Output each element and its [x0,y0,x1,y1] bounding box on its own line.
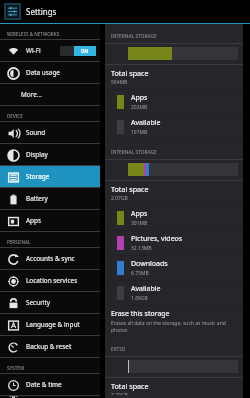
button[interactable]: Display [0,144,100,165]
button[interactable]: Apps [0,210,100,231]
button[interactable]: Apps [105,90,243,114]
button[interactable]: Battery [0,188,100,209]
button[interactable]: Pictures, videos [105,231,243,255]
staticText: Erase this storage [111,309,170,319]
staticText: Apps [131,93,148,103]
staticText: Battery [26,194,48,203]
button[interactable]: Backup & reset [0,336,100,357]
staticText: Apps [26,216,42,225]
staticText: DEVICE [7,113,23,119]
staticText: Location services [26,276,78,285]
staticText: 301MB [131,220,148,227]
button[interactable]: Erase this storage [105,306,243,337]
staticText: More... [21,90,42,99]
staticText: PERSONAL [7,239,31,245]
button[interactable]: Settings [0,0,250,23]
staticText: Pictures, videos [131,234,183,244]
staticText: Display [26,150,48,159]
staticText: 197MB [131,129,148,136]
button[interactable]: Security [0,292,100,313]
staticText: ON [81,48,89,54]
staticText: Total space [111,381,149,391]
button[interactable]: Accessibility [0,396,100,398]
staticText: Available [131,118,161,128]
other: Settings [5,4,20,19]
button[interactable]: Sound [0,122,100,143]
staticText: Sound [26,128,46,137]
button[interactable]: Accounts & sync [0,248,100,269]
button[interactable]: Date & time [0,374,100,395]
staticText: Data usage [26,68,60,77]
staticText: Accounts & sync [26,254,75,263]
staticText: Security [26,298,50,307]
button[interactable]: Language & input [0,314,100,335]
button[interactable]: ON [60,46,96,56]
staticText: Total space [111,184,149,194]
staticText: 504MB [111,79,128,86]
staticText: Language & input [26,320,80,329]
staticText: Storage [26,172,50,181]
staticText: 7.20GB [111,392,128,395]
button[interactable]: Storage [0,166,100,187]
staticText: Backup & reset [26,342,72,351]
button[interactable]: More... [0,84,100,105]
staticText: 202MB [131,104,148,111]
staticText: Apps [131,209,148,219]
staticText: Available [131,284,161,294]
staticText: WIRELESS & NETWORKS [7,31,60,37]
button[interactable]: Downloads [105,256,243,280]
staticText: Date & time [26,380,62,389]
button[interactable]: Apps [105,206,243,230]
staticText: Total space [111,68,149,78]
button[interactable]: Data usage [0,62,100,83]
staticText: EXTSD [111,346,126,353]
staticText: SYSTEM [7,365,25,371]
button[interactable]: Available [105,115,243,139]
staticText: Downloads [131,259,168,269]
button[interactable]: Wi-Fi [0,40,100,61]
button[interactable]: Location services [0,270,100,291]
staticText: INTERNAL STORAGE [111,33,157,40]
staticText: INTERNAL STORAGE [111,149,157,156]
staticText: 32.13MB [131,245,152,252]
staticText: 6.75MB [131,270,149,277]
staticText: 2.07GB [111,195,128,202]
staticText: 1.69GB [131,295,148,302]
staticText: Wi-Fi [26,46,41,55]
staticText: Erases all data on the storage, such as … [111,320,235,334]
staticText: Settings [26,6,57,17]
button[interactable]: Available [105,281,243,305]
